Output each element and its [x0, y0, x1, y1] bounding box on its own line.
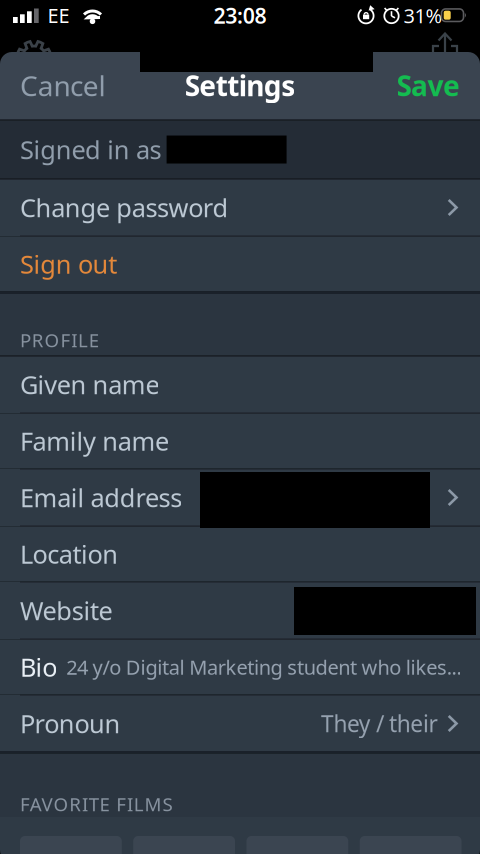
staticText: Cancel: [20, 67, 105, 104]
staticText: Settings: [185, 67, 295, 104]
staticText: They / their: [321, 708, 437, 738]
staticText: Given name: [20, 368, 159, 401]
button[interactable]: Sign out: [0, 236, 480, 291]
button[interactable]: Pronoun: [0, 696, 480, 751]
button[interactable]: Given name: [0, 357, 480, 412]
button[interactable]: Email address: [0, 470, 480, 525]
staticText: Pronoun: [20, 707, 121, 740]
staticText: Sign out: [20, 247, 117, 281]
staticText: Location: [20, 537, 118, 571]
button[interactable]: Location: [0, 526, 480, 581]
staticText: 31%: [403, 2, 442, 29]
staticText: 23:08: [213, 1, 267, 30]
button[interactable]: Bio: [0, 639, 480, 694]
button[interactable]: Family name: [0, 413, 480, 468]
button[interactable]: Website: [0, 583, 480, 638]
button[interactable]: Cancel: [20, 67, 105, 104]
staticText: Family name: [20, 424, 169, 458]
staticText: Change password: [20, 191, 228, 224]
staticText: Website: [20, 594, 113, 627]
staticText: PROFILE: [20, 328, 99, 352]
button[interactable]: Save: [396, 67, 460, 104]
staticText: 24 y/o Digital Marketing student who lik…: [66, 654, 461, 680]
staticText: Signed in as: [20, 133, 162, 166]
staticText: FAVORITE FILMS: [20, 792, 172, 816]
staticText: EE: [47, 2, 69, 29]
staticText: Save: [396, 67, 460, 104]
staticText: Bio: [20, 650, 57, 684]
button[interactable]: Change password: [0, 180, 480, 235]
staticText: Email address: [20, 481, 182, 514]
